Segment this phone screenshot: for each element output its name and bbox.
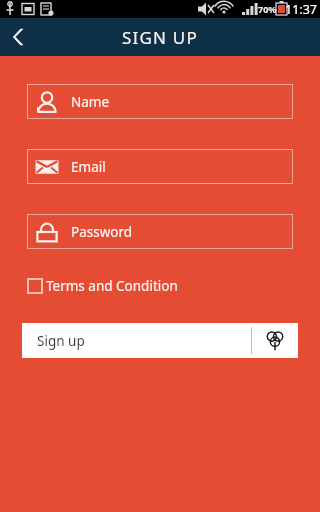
staticText: Terms and Condition	[46, 277, 178, 295]
staticText: 70%	[258, 3, 277, 15]
staticText: Name	[71, 93, 110, 111]
staticText: Password	[71, 223, 133, 241]
button[interactable]: Terms and Condition	[27, 277, 178, 295]
staticText: 11:37	[285, 1, 317, 18]
button[interactable]: Name	[27, 84, 293, 119]
button[interactable]: Password	[27, 214, 293, 249]
staticText: SIGN UP	[122, 26, 198, 49]
staticText: Email	[71, 158, 106, 176]
button[interactable]: Email	[27, 149, 293, 184]
button[interactable]: Sign up	[22, 323, 298, 358]
button[interactable]: Back	[0, 18, 40, 56]
staticText: Sign up	[37, 332, 85, 350]
